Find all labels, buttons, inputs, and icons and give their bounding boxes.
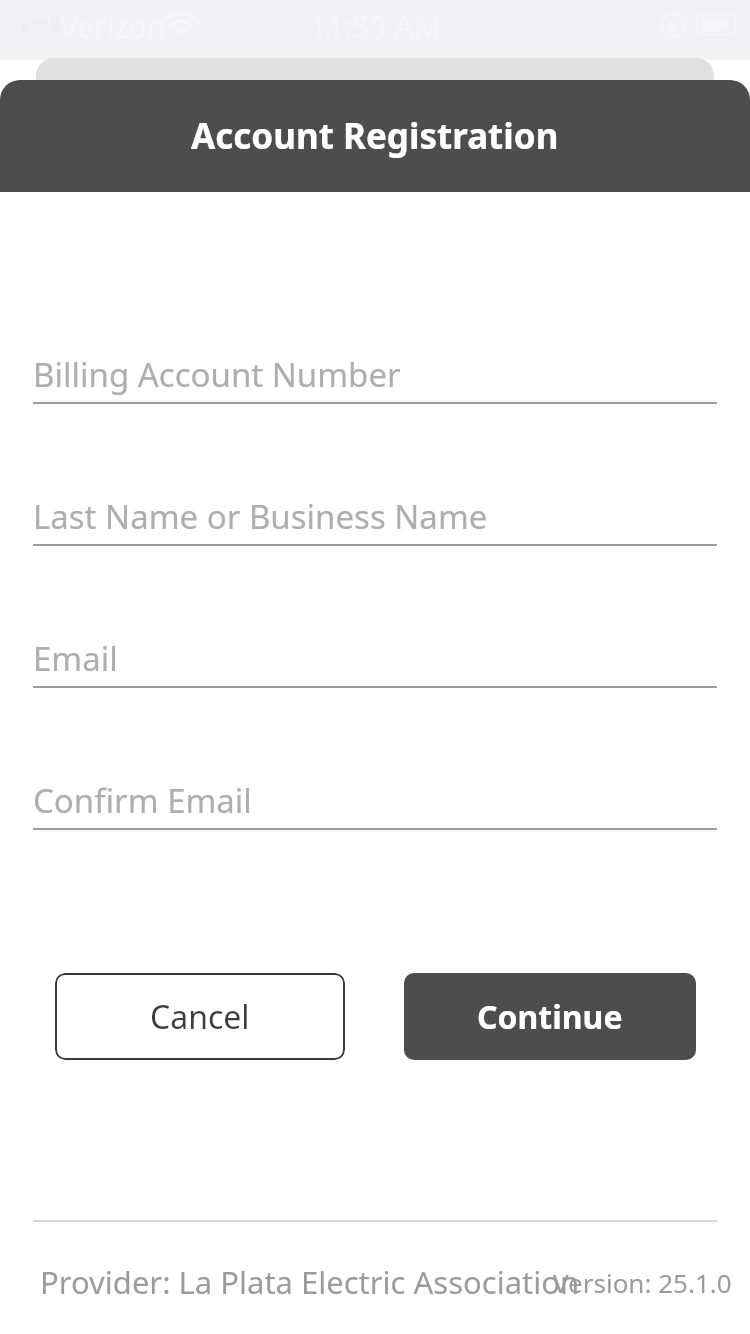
button[interactable]: Continue [404,973,696,1060]
staticText: Billing Account Number [33,352,401,397]
staticText: Version: 25.1.0 [553,1265,732,1300]
button[interactable]: Last Name or Business Name [33,492,717,546]
staticText: Email [33,636,118,681]
staticText: Continue [477,995,623,1039]
button[interactable]: Email [33,634,717,688]
button[interactable]: Confirm Email [33,776,717,830]
staticText: Last Name or Business Name [33,494,488,539]
staticText: Confirm Email [33,778,252,823]
staticText: Cancel [150,995,250,1039]
button[interactable]: Billing Account Number [33,350,717,404]
button[interactable]: Cancel [55,973,345,1060]
staticText: Provider: La Plata Electric Association [40,1261,580,1303]
staticText: Account Registration [191,112,559,160]
